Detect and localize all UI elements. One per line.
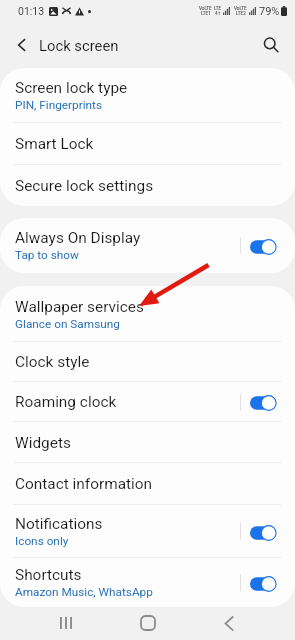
staticText: LTE1 (201, 11, 211, 16)
button[interactable]: Home (127, 606, 169, 640)
staticText: Amazon Music, WhatsApp (15, 585, 153, 599)
staticText: Always On Display (15, 229, 141, 247)
staticText: Secure lock settings (15, 177, 154, 195)
staticText: 79% (259, 5, 280, 18)
staticText: Contact information (15, 475, 153, 493)
button[interactable]: Contact information (0, 463, 295, 505)
staticText: 01:13 (18, 5, 45, 17)
button[interactable]: Back (11, 34, 33, 56)
staticText: Smart Lock (15, 135, 94, 153)
button[interactable]: Toggle (250, 237, 276, 255)
button[interactable]: Clock style (0, 342, 295, 382)
staticText: Screen lock type (15, 79, 128, 97)
button[interactable]: Screen lock type (0, 68, 295, 123)
button[interactable]: Always On Display (0, 218, 295, 273)
staticText: Tap to show (15, 248, 79, 262)
staticText: VoLTE (199, 6, 212, 11)
button[interactable]: Search (259, 33, 283, 57)
staticText: LTE (214, 6, 222, 11)
button[interactable]: Notifications (0, 505, 295, 558)
staticText: Wallpaper services (15, 298, 144, 316)
button[interactable]: Toggle (250, 393, 276, 411)
button[interactable]: Toggle (250, 523, 276, 541)
staticText: Roaming clock (15, 393, 117, 411)
staticText: Notifications (15, 515, 103, 533)
staticText: Glance on Samsung (15, 317, 120, 331)
button[interactable]: Shortcuts (0, 558, 295, 607)
staticText: 4↑ (215, 11, 222, 16)
button[interactable]: Recents (45, 606, 87, 640)
staticText: Clock style (15, 353, 90, 371)
button[interactable]: Secure lock settings (0, 165, 295, 206)
staticText: LTE2 (236, 11, 246, 16)
staticText: Lock screen (39, 37, 119, 54)
button[interactable]: Back (208, 606, 250, 640)
button[interactable]: Wallpaper services (0, 286, 295, 342)
staticText: Widgets (15, 434, 71, 452)
staticText: VoLTE (234, 6, 247, 11)
staticText: PIN, Fingerprints (15, 98, 103, 112)
button[interactable]: Toggle (250, 574, 276, 592)
button[interactable]: Smart Lock (0, 123, 295, 165)
staticText: Shortcuts (15, 566, 82, 584)
button[interactable]: Roaming clock (0, 382, 295, 422)
button[interactable]: Widgets (0, 422, 295, 463)
staticText: Icons only (15, 534, 69, 548)
